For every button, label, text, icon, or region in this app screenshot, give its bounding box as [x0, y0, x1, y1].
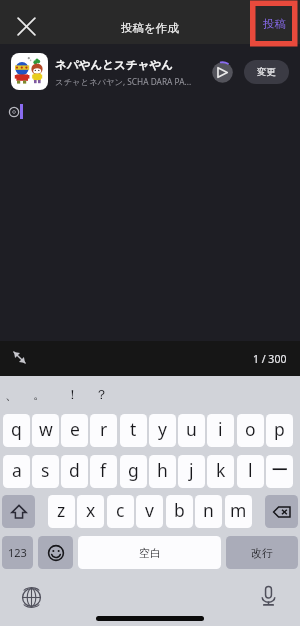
staticText: h [157, 458, 168, 482]
button[interactable]: d [61, 455, 88, 488]
staticText: 1 / 300 [253, 352, 287, 366]
button[interactable]: Shift [2, 495, 35, 528]
button[interactable]: 空白 [78, 536, 221, 569]
button[interactable]: g [120, 455, 147, 488]
button[interactable]: l [237, 455, 264, 488]
button[interactable]: Switch keyboard [22, 588, 41, 607]
button[interactable]: z [48, 495, 75, 528]
button[interactable]: ー [266, 455, 293, 488]
staticText: 投稿を作成 [121, 21, 179, 35]
button[interactable]: 。 [26, 381, 52, 407]
staticText: b [174, 498, 185, 522]
staticText: t [130, 417, 137, 441]
staticText: 、 [5, 386, 18, 402]
staticText: s [41, 458, 50, 482]
button[interactable]: m [225, 495, 252, 528]
button[interactable]: 改行 [226, 536, 298, 569]
staticText: y [158, 417, 167, 441]
button[interactable]: i [207, 414, 234, 447]
staticText: v [145, 498, 154, 522]
button[interactable]: a [3, 455, 30, 488]
staticText: i [218, 417, 223, 441]
staticText: 投稿 [263, 17, 286, 31]
button[interactable]: y [149, 414, 176, 447]
button[interactable]: Dictate [258, 585, 279, 606]
staticText: m [230, 498, 247, 522]
button[interactable]: Emoji [38, 536, 73, 569]
staticText: r [100, 417, 108, 441]
button[interactable]: ！ [59, 381, 85, 407]
staticText: k [216, 458, 226, 482]
button[interactable]: h [149, 455, 176, 488]
button[interactable]: c [107, 495, 134, 528]
staticText: 変更 [257, 66, 276, 78]
button[interactable]: p [266, 414, 293, 447]
button[interactable]: o [237, 414, 264, 447]
staticText: x [86, 498, 96, 522]
button[interactable]: j [178, 455, 205, 488]
button[interactable]: v [136, 495, 163, 528]
staticText: 。 [33, 386, 46, 402]
staticText: e [70, 417, 80, 441]
button[interactable]: 123 [2, 536, 33, 569]
button[interactable]: k [207, 455, 234, 488]
button[interactable]: r [90, 414, 117, 447]
button[interactable]: Delete [265, 495, 298, 528]
staticText: p [274, 417, 285, 441]
button[interactable]: Expand [11, 349, 28, 366]
staticText: g [128, 458, 139, 482]
staticText: スチャとネパヤン, SCHA DARA PA... [55, 76, 192, 87]
staticText: ネパやんとスチャやん [55, 58, 173, 72]
staticText: z [57, 498, 66, 522]
button[interactable]: ？ [88, 381, 114, 407]
staticText: f [100, 458, 107, 482]
staticText: 空白 [139, 546, 161, 560]
button[interactable]: Play preview [211, 61, 234, 84]
staticText: ？ [95, 386, 108, 402]
staticText: c [116, 498, 125, 522]
button[interactable]: w [32, 414, 59, 447]
staticText: 123 [8, 545, 27, 560]
staticText: j [189, 458, 194, 482]
staticText: u [186, 417, 197, 441]
button[interactable]: x [77, 495, 104, 528]
button[interactable]: f [90, 455, 117, 488]
button[interactable]: q [3, 414, 30, 447]
button[interactable]: s [32, 455, 59, 488]
staticText: a [12, 458, 22, 482]
staticText: l [248, 458, 253, 482]
staticText: 改行 [251, 546, 273, 560]
button[interactable]: t [120, 414, 147, 447]
staticText: q [11, 417, 22, 441]
button[interactable]: 投稿 [256, 7, 292, 41]
button[interactable]: u [178, 414, 205, 447]
staticText: ー [271, 459, 289, 481]
staticText: n [203, 498, 214, 522]
button[interactable]: n [195, 495, 222, 528]
staticText: ！ [66, 386, 79, 402]
staticText: d [69, 458, 80, 482]
staticText: w [39, 417, 53, 441]
staticText: o [245, 417, 256, 441]
button[interactable]: Close [16, 16, 37, 37]
button[interactable]: b [166, 495, 193, 528]
button[interactable]: e [61, 414, 88, 447]
button[interactable]: 変更 [244, 60, 289, 84]
button[interactable]: 、 [0, 381, 24, 407]
